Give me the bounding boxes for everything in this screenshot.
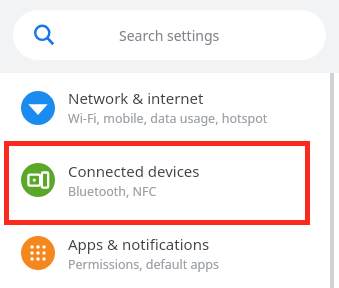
button[interactable]: Apps & notifications	[0, 218, 339, 288]
staticText: Bluetooth, NFC	[68, 183, 157, 200]
button[interactable]: Search	[13, 10, 326, 60]
button[interactable]: Network & internet	[0, 73, 339, 142]
other: Search	[33, 24, 55, 46]
staticText: Search settings	[119, 26, 220, 45]
staticText: Connected devices	[68, 161, 200, 181]
staticText: Wi-Fi, mobile, data usage, hotspot	[68, 110, 268, 127]
staticText: Apps & notifications	[68, 234, 210, 254]
staticText: Network & internet	[68, 88, 204, 108]
button[interactable]: Connected devices	[0, 142, 339, 218]
staticText: Permissions, default apps	[68, 256, 219, 273]
